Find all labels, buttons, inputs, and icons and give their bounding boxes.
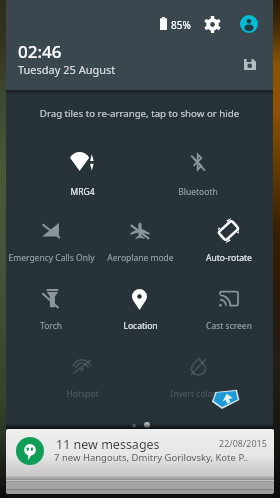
button[interactable]: Save	[238, 52, 262, 76]
staticText: Torch	[40, 320, 62, 332]
staticText: Auto-rotate	[206, 252, 252, 264]
staticText: Hotspot	[66, 388, 99, 400]
button[interactable]: Hotspot	[38, 388, 126, 402]
button[interactable]: Invert colours	[154, 388, 242, 402]
button[interactable]: MRG4	[38, 186, 126, 200]
staticText: 7 new Hangouts, Dmitry Gorilovsky, Kote …	[54, 451, 274, 464]
staticText: Emergency Calls Only	[8, 252, 95, 264]
button[interactable]: Torch	[7, 320, 95, 334]
staticText: Aeroplane mode	[107, 252, 174, 264]
button[interactable]: Aeroplane mode	[96, 252, 184, 266]
staticText: Bluetooth	[178, 186, 218, 198]
button[interactable]: Emergency Calls Only	[7, 252, 95, 266]
staticText: MRG4	[70, 186, 95, 198]
button[interactable]: User profile	[237, 12, 261, 36]
staticText: 85%	[171, 18, 191, 32]
staticText: Location	[123, 320, 158, 332]
staticText: Drag tiles to re-arrange, tap to show or…	[6, 107, 273, 120]
button[interactable]: Bluetooth	[154, 186, 242, 200]
staticText: Tuesday 25 August	[18, 62, 116, 77]
button[interactable]: Auto-rotate	[185, 252, 273, 266]
staticText: Invert colours	[170, 388, 226, 400]
button[interactable]: Location	[96, 320, 184, 334]
button[interactable]: Settings	[200, 12, 224, 36]
button[interactable]: Cast screen	[185, 320, 273, 334]
button[interactable]: 11 new messages	[6, 429, 274, 477]
staticText: 22/08/2015	[219, 437, 267, 449]
staticText: 02:46	[18, 40, 62, 63]
staticText: 11 new messages	[56, 436, 160, 453]
staticText: Cast screen	[206, 320, 252, 332]
